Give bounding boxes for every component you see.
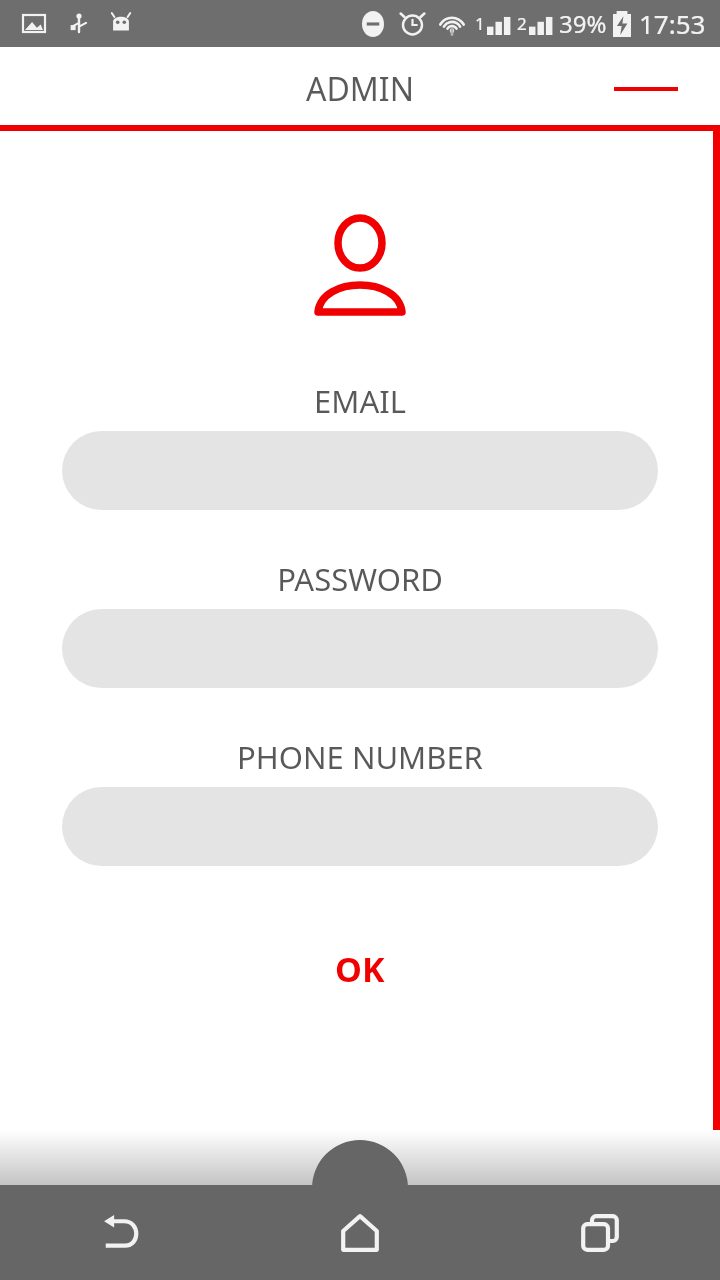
button[interactable]: PASSWORD xyxy=(62,609,658,688)
button[interactable]: Home xyxy=(240,1185,480,1280)
staticText: PHONE NUMBER xyxy=(237,736,483,778)
staticText: 17:53 xyxy=(639,6,706,41)
staticText: PASSWORD xyxy=(277,558,443,600)
staticText: 2 xyxy=(517,12,527,35)
button[interactable]: EMAIL xyxy=(62,431,658,510)
staticText: ADMIN xyxy=(306,67,415,111)
staticText: OK xyxy=(335,946,385,992)
button[interactable]: Profile avatar xyxy=(288,194,432,338)
staticText: EMAIL xyxy=(314,380,406,422)
button[interactable]: Menu xyxy=(612,69,680,109)
button[interactable]: Back xyxy=(0,1185,240,1280)
button[interactable]: PHONE NUMBER xyxy=(62,787,658,866)
button[interactable]: Recent apps xyxy=(480,1185,720,1280)
staticText: 39% xyxy=(559,7,607,40)
button[interactable]: OK xyxy=(314,923,406,1015)
staticText: 1 xyxy=(475,12,485,35)
